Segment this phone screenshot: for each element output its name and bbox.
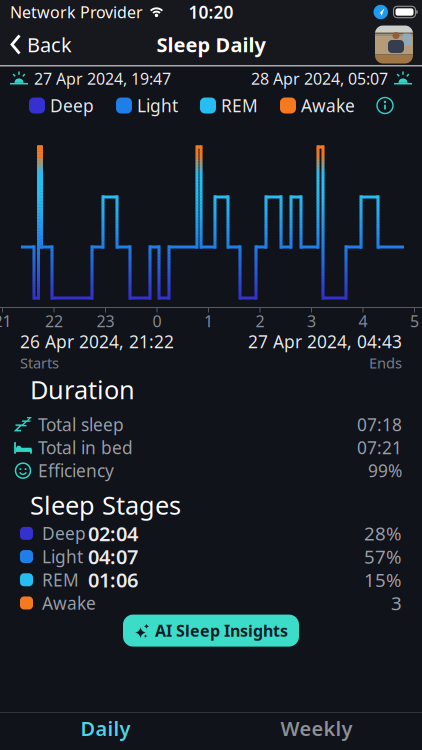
- staticText: 0: [152, 310, 161, 332]
- staticText: Light: [137, 94, 178, 117]
- staticText: 28%: [364, 521, 402, 546]
- staticText: Awake: [42, 591, 96, 614]
- staticText: 23: [96, 310, 114, 332]
- button[interactable]: Daily: [0, 715, 211, 742]
- staticText: 99%: [368, 459, 402, 482]
- staticText: Efficiency: [38, 459, 114, 482]
- button[interactable]: Back: [0, 31, 72, 58]
- staticText: REM: [221, 94, 258, 117]
- staticText: Daily: [80, 715, 130, 742]
- staticText: 28 Apr 2024, 05:07: [251, 68, 388, 89]
- staticText: Deep: [50, 94, 94, 117]
- staticText: 27 Apr 2024, 04:43: [248, 330, 402, 353]
- staticText: 27 Apr 2024, 19:47: [34, 68, 171, 89]
- button[interactable]: Info: [377, 97, 393, 113]
- staticText: 1: [204, 310, 213, 332]
- staticText: REM: [42, 568, 79, 591]
- staticText: 02:04: [88, 520, 138, 547]
- staticText: AI Sleep Insights: [155, 620, 288, 641]
- staticText: 26 Apr 2024, 21:22: [20, 330, 174, 353]
- button[interactable]: AI Sleep Insights: [123, 615, 299, 647]
- staticText: 57%: [364, 544, 402, 569]
- staticText: Sleep Stages: [30, 488, 181, 522]
- staticText: Deep: [42, 522, 86, 545]
- staticText: 3: [307, 310, 316, 332]
- staticText: 15%: [364, 567, 402, 592]
- staticText: Duration: [30, 372, 135, 406]
- staticText: 22: [45, 310, 63, 332]
- staticText: 4: [358, 310, 367, 332]
- staticText: 10:20: [188, 0, 233, 23]
- staticText: Weekly: [280, 715, 352, 742]
- button[interactable]: Weekly: [211, 715, 422, 742]
- staticText: 21: [0, 310, 11, 332]
- staticText: Awake: [301, 94, 355, 117]
- staticText: 04:07: [88, 543, 138, 570]
- staticText: Total in bed: [38, 436, 133, 459]
- staticText: Starts: [20, 353, 59, 372]
- staticText: 07:21: [357, 436, 402, 459]
- staticText: Sleep Daily: [156, 31, 265, 58]
- staticText: Network Provider: [10, 1, 143, 23]
- staticText: 2: [255, 310, 264, 332]
- staticText: Ends: [369, 353, 402, 372]
- button[interactable]: Profile: [375, 25, 422, 63]
- staticText: 01:06: [88, 566, 138, 593]
- staticText: 07:18: [357, 413, 402, 436]
- staticText: Total sleep: [38, 413, 124, 436]
- staticText: 5: [410, 310, 419, 332]
- staticText: Light: [42, 545, 83, 568]
- staticText: Back: [27, 31, 72, 58]
- staticText: 3: [391, 591, 402, 615]
